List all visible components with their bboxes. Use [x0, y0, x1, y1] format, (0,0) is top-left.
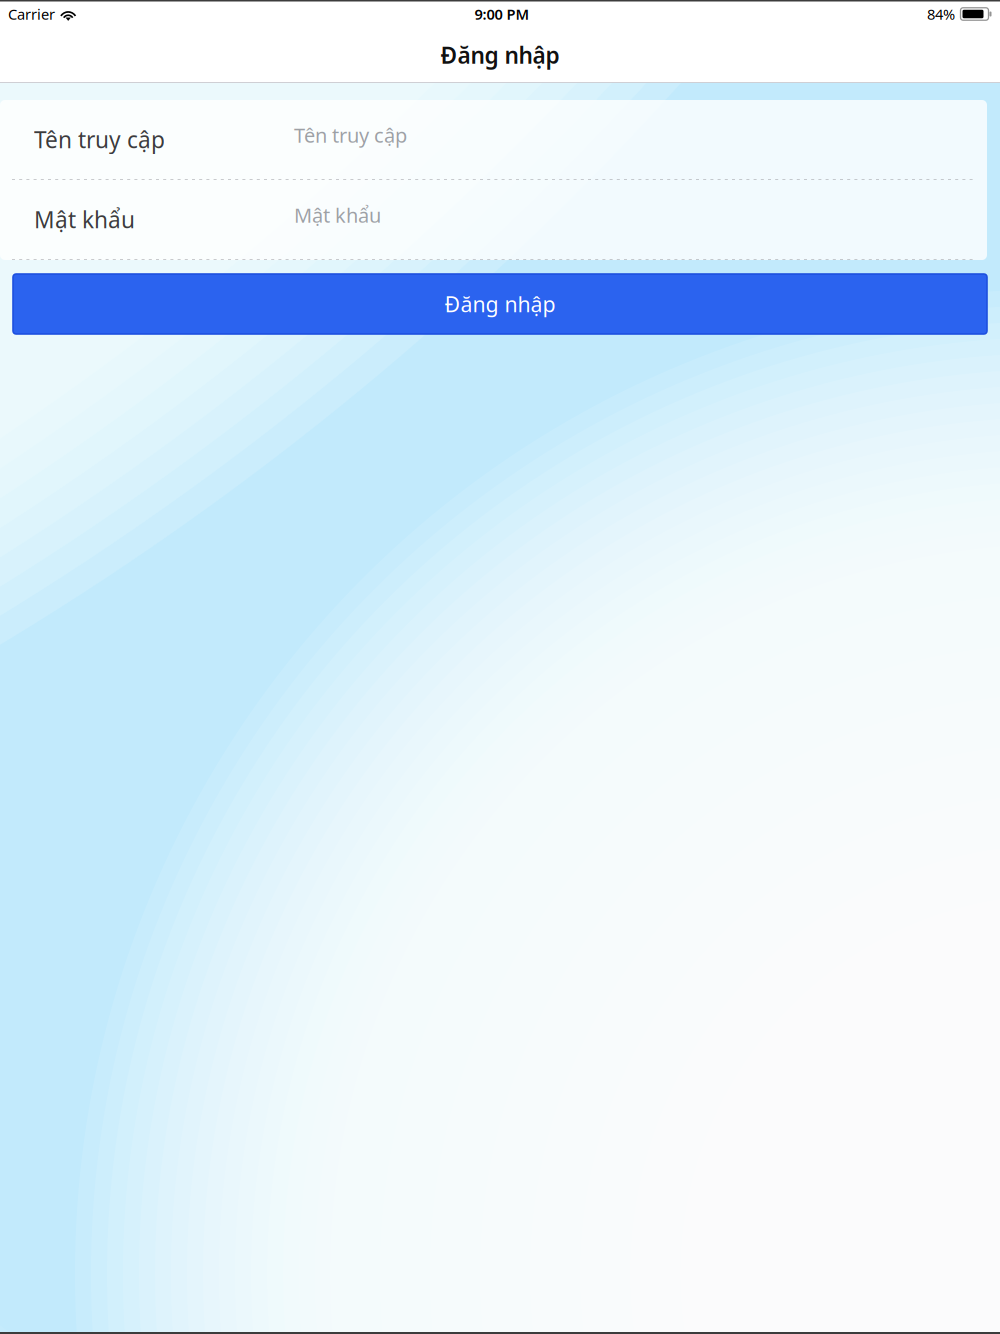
staticText: Đăng nhập	[444, 290, 555, 318]
staticText: Mật khẩu	[294, 202, 381, 228]
staticText: 84%	[927, 4, 955, 24]
staticText: Tên truy cập	[294, 122, 407, 148]
staticText: 9:00 PM	[474, 4, 529, 24]
staticText: Mật khẩu	[34, 204, 135, 234]
staticText: Carrier	[8, 4, 55, 24]
staticText: Đăng nhập	[440, 40, 559, 70]
button[interactable]: Đăng nhập	[13, 274, 987, 334]
staticText: Tên truy cập	[34, 124, 165, 154]
